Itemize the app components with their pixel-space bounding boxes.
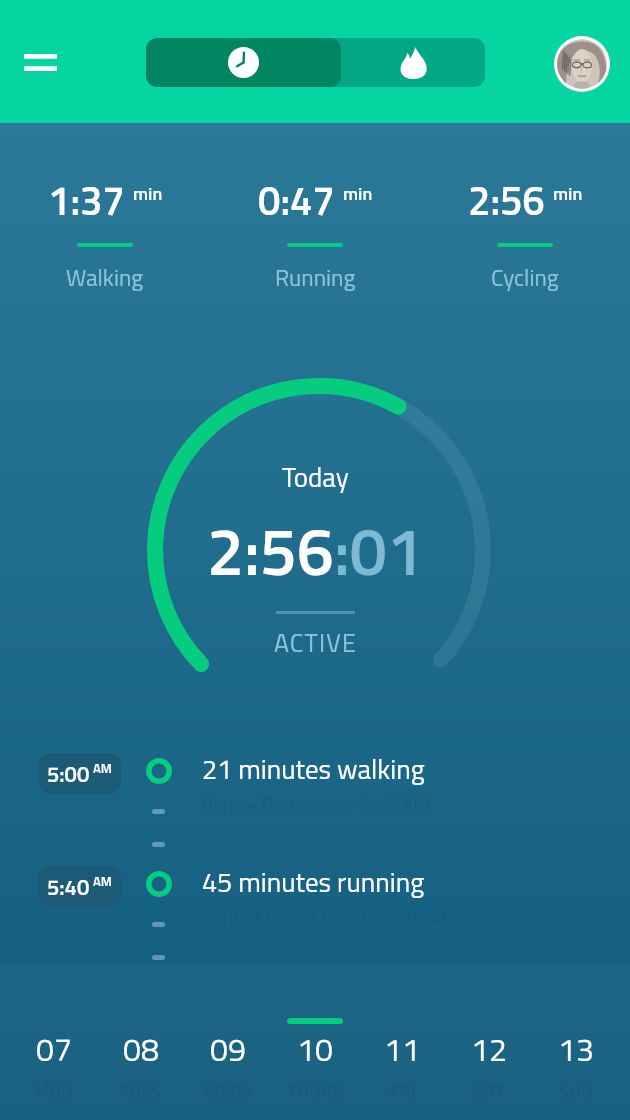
staticText: 2:56 (207, 500, 334, 600)
staticText: min (133, 180, 163, 207)
button[interactable]: 09 (184, 1000, 271, 1120)
staticText: 21 minutes walking (202, 748, 425, 789)
staticText: 07 (36, 1025, 72, 1074)
staticText: 2:56 (468, 170, 545, 231)
staticText: 13 (558, 1025, 594, 1074)
button[interactable]: Calories tab (341, 38, 485, 87)
staticText: 5:40 (47, 870, 90, 903)
staticText: 45 minutes running (202, 861, 425, 902)
button[interactable]: 1:37 (0, 170, 210, 295)
staticText: :01 (334, 500, 424, 600)
staticText: 08 (123, 1025, 159, 1074)
button[interactable]: 07 (11, 1000, 97, 1120)
button[interactable]: Profile (554, 36, 610, 92)
button[interactable]: 5:40 (0, 858, 630, 963)
button[interactable]: 10 (271, 1000, 358, 1120)
button[interactable]: Open navigation menu (12, 30, 68, 94)
staticText: ACTIVE (274, 624, 358, 662)
staticText: 11 (384, 1025, 420, 1074)
staticText: min (343, 180, 373, 207)
staticText: 0:47 (258, 170, 335, 231)
staticText: Cycling (491, 260, 559, 295)
button[interactable]: 08 (97, 1000, 184, 1120)
button[interactable]: 5:00 (0, 745, 630, 850)
button[interactable]: 13 (532, 1000, 619, 1120)
staticText: Walking (66, 260, 144, 295)
staticText: min (553, 180, 583, 207)
button[interactable]: 11 (358, 1000, 445, 1120)
staticText: Running (275, 260, 356, 295)
button[interactable]: 0:47 (210, 170, 420, 295)
staticText: 10 (297, 1025, 333, 1074)
staticText: Today (282, 456, 349, 497)
staticText: 5:00 (47, 757, 90, 790)
staticText: 09 (210, 1025, 246, 1074)
button[interactable]: 2:56 (420, 170, 630, 295)
button[interactable]: Duration tab, selected (146, 38, 341, 87)
staticText: 1:37 (48, 170, 125, 231)
staticText: 12 (471, 1025, 507, 1074)
button[interactable]: 12 (445, 1000, 532, 1120)
staticText: AM (93, 871, 112, 891)
staticText: AM (93, 758, 112, 778)
